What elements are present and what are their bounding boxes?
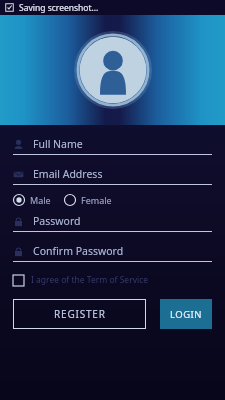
staticText: LOGIN: [170, 308, 203, 321]
staticText: Email Address: [33, 167, 103, 181]
button[interactable]: REGISTER: [13, 299, 146, 329]
staticText: REGISTER: [54, 307, 106, 321]
button[interactable]: Email Address: [13, 167, 212, 185]
button[interactable]: Password: [13, 214, 212, 232]
button[interactable]: Female: [64, 194, 112, 206]
button[interactable]: LOGIN: [160, 299, 212, 329]
staticText: Confirm Password: [33, 244, 124, 258]
staticText: Female: [81, 194, 112, 206]
staticText: Male: [30, 194, 51, 206]
staticText: Password: [33, 214, 81, 228]
button[interactable]: I agree of the Term of Service: [13, 274, 212, 286]
staticText: Saving screenshot...: [19, 2, 99, 14]
button[interactable]: Confirm Password: [13, 244, 212, 262]
button[interactable]: Male: [13, 194, 51, 206]
staticText: I agree of the Term of Service: [31, 274, 149, 286]
staticText: Full Name: [33, 137, 83, 151]
button[interactable]: Full Name: [13, 137, 212, 155]
